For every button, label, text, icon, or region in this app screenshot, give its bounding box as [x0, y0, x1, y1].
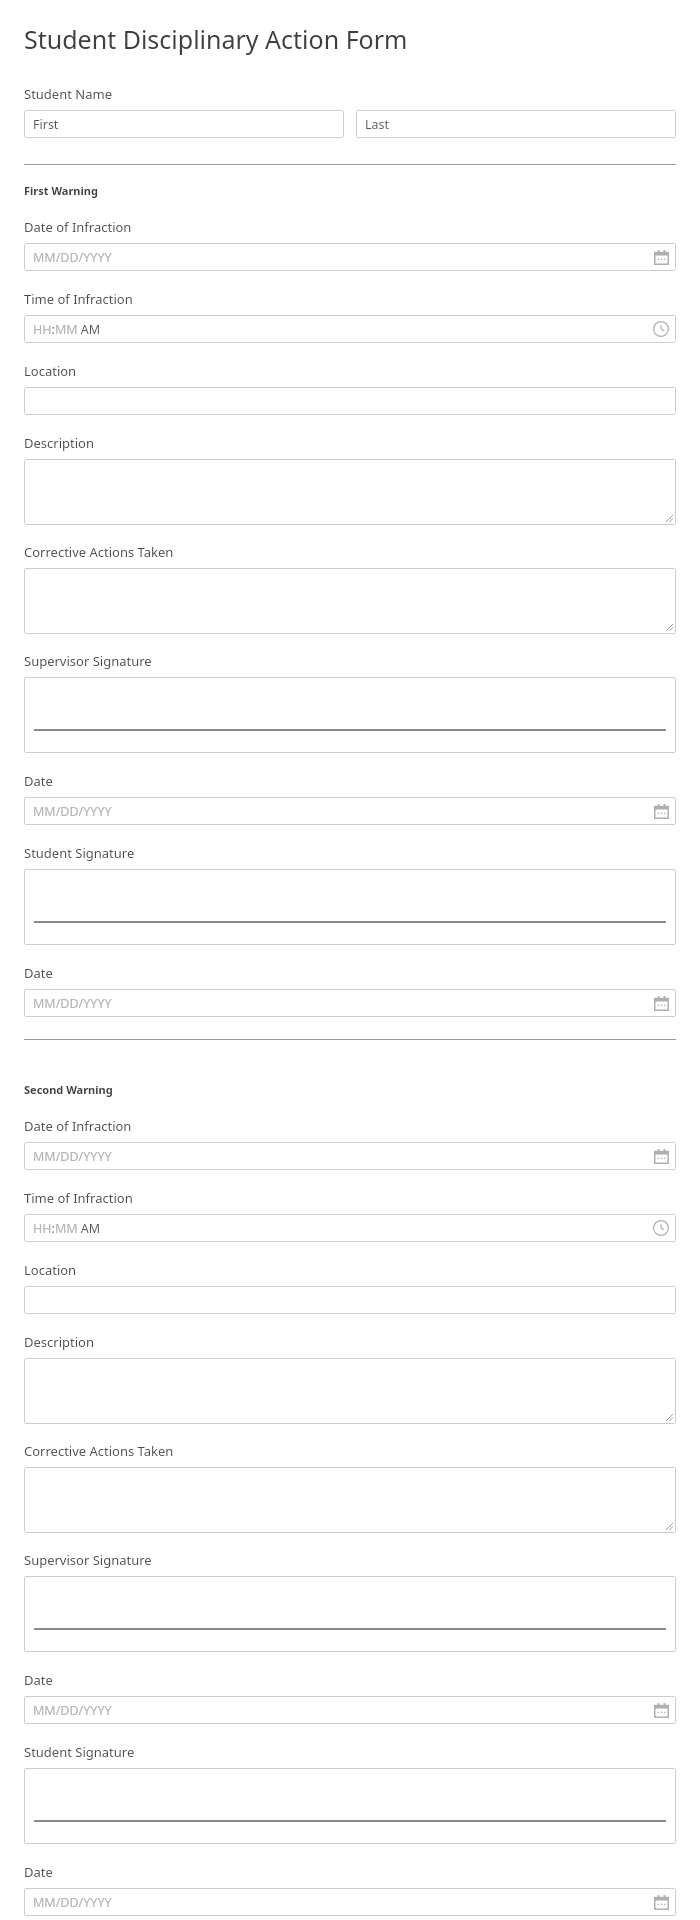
- staticText: Supervisor Signature: [24, 1551, 152, 1569]
- staticText: Date: [24, 1671, 53, 1689]
- button[interactable]: [24, 1286, 676, 1314]
- staticText: Time of Infraction: [24, 1189, 133, 1207]
- staticText: HH:MM AM: [33, 321, 101, 338]
- button[interactable]: Signature field: [24, 677, 676, 753]
- button[interactable]: [24, 568, 676, 634]
- button[interactable]: Choose date: [24, 797, 676, 825]
- staticText: HH:MM AM: [33, 1220, 101, 1237]
- staticText: Student Signature: [24, 1743, 135, 1761]
- staticText: Description: [24, 434, 94, 452]
- staticText: MM/DD/YYYY: [33, 1148, 112, 1165]
- button[interactable]: [24, 1467, 676, 1533]
- button[interactable]: [24, 459, 676, 525]
- staticText: Date of Infraction: [24, 218, 132, 236]
- button[interactable]: Choose time: [24, 1214, 676, 1242]
- staticText: Date: [24, 964, 53, 982]
- button[interactable]: Signature field: [24, 869, 676, 945]
- staticText: Time of Infraction: [24, 290, 133, 308]
- staticText: Student Name: [24, 85, 112, 103]
- staticText: MM/DD/YYYY: [33, 1702, 112, 1719]
- staticText: Location: [24, 1261, 77, 1279]
- button[interactable]: Last: [356, 110, 676, 138]
- staticText: Date of Infraction: [24, 1117, 132, 1135]
- button[interactable]: Choose date: [24, 1888, 676, 1916]
- button[interactable]: First: [24, 110, 344, 138]
- staticText: Supervisor Signature: [24, 652, 152, 670]
- staticText: First Warning: [24, 183, 98, 198]
- staticText: Corrective Actions Taken: [24, 1442, 174, 1460]
- staticText: MM/DD/YYYY: [33, 803, 112, 820]
- button[interactable]: Choose date: [24, 989, 676, 1017]
- staticText: Corrective Actions Taken: [24, 543, 174, 561]
- staticText: MM/DD/YYYY: [33, 1894, 112, 1911]
- staticText: Last: [365, 116, 390, 133]
- staticText: MM/DD/YYYY: [33, 995, 112, 1012]
- staticText: MM/DD/YYYY: [33, 249, 112, 266]
- staticText: Second Warning: [24, 1082, 113, 1097]
- button[interactable]: [24, 1358, 676, 1424]
- staticText: Student Signature: [24, 844, 135, 862]
- staticText: Student Disciplinary Action Form: [24, 22, 408, 56]
- button[interactable]: Signature field: [24, 1576, 676, 1652]
- button[interactable]: Choose date: [24, 1142, 676, 1170]
- button[interactable]: Choose time: [24, 315, 676, 343]
- button[interactable]: [24, 387, 676, 415]
- staticText: Location: [24, 362, 77, 380]
- staticText: Description: [24, 1333, 94, 1351]
- button[interactable]: Choose date: [24, 243, 676, 271]
- staticText: First: [33, 116, 59, 133]
- staticText: Date: [24, 1863, 53, 1881]
- staticText: Date: [24, 772, 53, 790]
- button[interactable]: Signature field: [24, 1768, 676, 1844]
- button[interactable]: Choose date: [24, 1696, 676, 1724]
